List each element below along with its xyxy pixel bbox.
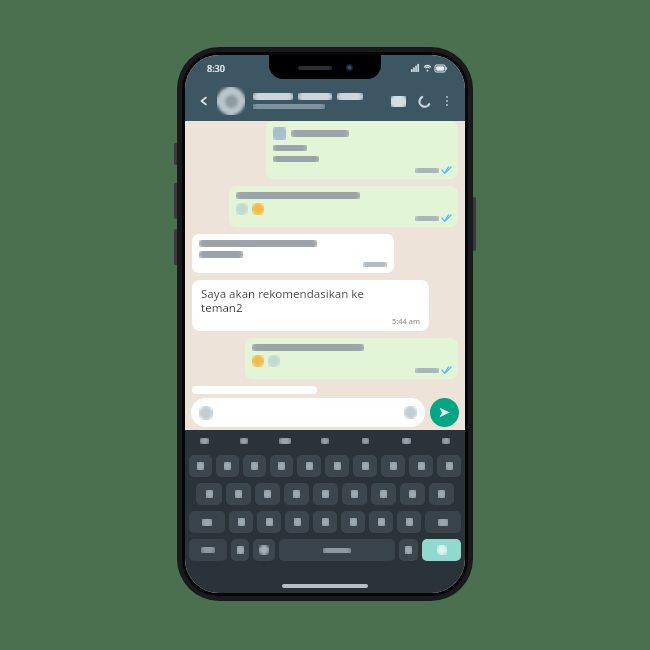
button[interactable] bbox=[312, 435, 338, 447]
button[interactable]: Voice call bbox=[411, 88, 437, 114]
button[interactable] bbox=[192, 234, 394, 273]
button[interactable]: Key bbox=[285, 511, 309, 533]
button[interactable]: Key bbox=[313, 511, 337, 533]
button[interactable]: Key bbox=[243, 455, 266, 477]
button[interactable]: Key bbox=[400, 483, 425, 505]
button[interactable]: Key bbox=[325, 455, 349, 477]
button[interactable]: Enter bbox=[422, 539, 461, 561]
button[interactable] bbox=[393, 435, 419, 447]
button[interactable]: Key bbox=[255, 483, 280, 505]
button[interactable]: Key bbox=[270, 455, 293, 477]
button[interactable] bbox=[352, 435, 378, 447]
button[interactable]: Key bbox=[297, 455, 321, 477]
button[interactable]: Key bbox=[229, 511, 253, 533]
button[interactable]: Key bbox=[226, 483, 251, 505]
button[interactable]: Key bbox=[425, 511, 461, 533]
button[interactable]: Key bbox=[284, 483, 309, 505]
button[interactable] bbox=[272, 435, 298, 447]
button[interactable]: Key bbox=[341, 511, 365, 533]
button[interactable]: Key bbox=[253, 539, 275, 561]
button[interactable]: Key bbox=[196, 483, 222, 505]
button[interactable]: Key bbox=[189, 511, 225, 533]
staticText: 5:44 am bbox=[392, 316, 421, 326]
button[interactable]: Key bbox=[381, 455, 405, 477]
button[interactable] bbox=[192, 386, 317, 394]
staticText: Saya akan rekomendasikan ke teman2 bbox=[201, 286, 364, 316]
button[interactable]: Saya akan rekomendasikan ke teman2 bbox=[192, 280, 429, 331]
button[interactable]: Key bbox=[353, 455, 377, 477]
button[interactable] bbox=[433, 435, 459, 447]
button[interactable] bbox=[231, 435, 257, 447]
button[interactable]: Key bbox=[279, 539, 395, 561]
button[interactable]: Key bbox=[429, 483, 454, 505]
button[interactable]: Video call bbox=[385, 88, 411, 114]
button[interactable] bbox=[245, 338, 458, 379]
button[interactable]: Key bbox=[313, 483, 338, 505]
button[interactable]: Key bbox=[409, 455, 433, 477]
button[interactable]: Key bbox=[399, 539, 418, 561]
button[interactable]: Key bbox=[437, 455, 461, 477]
button[interactable]: Send bbox=[430, 398, 459, 427]
staticText: 8:30 bbox=[207, 62, 225, 74]
button[interactable]: Key bbox=[369, 511, 393, 533]
button[interactable] bbox=[253, 93, 385, 109]
button[interactable]: Key bbox=[189, 455, 212, 477]
button[interactable]: Key bbox=[371, 483, 396, 505]
button[interactable]: Key bbox=[189, 539, 227, 561]
button[interactable]: Key bbox=[231, 539, 249, 561]
button[interactable]: Key bbox=[216, 455, 239, 477]
button[interactable]: Key bbox=[342, 483, 367, 505]
button[interactable]: Back bbox=[193, 90, 215, 112]
button[interactable] bbox=[191, 435, 217, 447]
button[interactable] bbox=[191, 398, 425, 427]
button[interactable]: More options bbox=[437, 91, 457, 111]
button[interactable] bbox=[266, 121, 458, 179]
button[interactable]: Key bbox=[397, 511, 421, 533]
button[interactable]: Key bbox=[257, 511, 281, 533]
button[interactable] bbox=[229, 186, 458, 227]
